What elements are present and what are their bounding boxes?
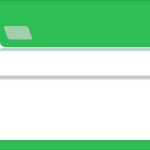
button[interactable] (0, 140, 150, 150)
button[interactable]: App logo (0, 0, 150, 47)
other: App logo (0, 0, 40, 47)
